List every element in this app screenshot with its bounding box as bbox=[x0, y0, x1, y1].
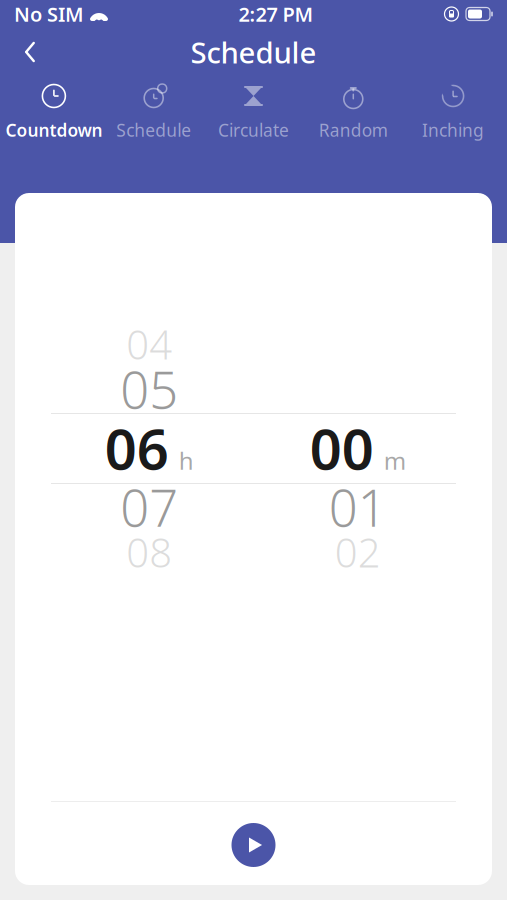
staticText: 05 bbox=[120, 355, 178, 423]
staticText: 06 bbox=[105, 411, 169, 485]
staticText: 2:27 PM bbox=[238, 1, 313, 27]
button[interactable]: Schedule bbox=[104, 78, 204, 145]
staticText: 08 bbox=[126, 525, 172, 578]
staticText: 01 bbox=[329, 473, 387, 541]
staticText: Countdown bbox=[5, 118, 102, 141]
staticText: Circulate bbox=[218, 118, 289, 141]
button[interactable]: Back bbox=[8, 30, 52, 74]
staticText: 02 bbox=[335, 525, 381, 578]
staticText: Schedule bbox=[116, 118, 191, 141]
staticText: Inching bbox=[422, 118, 484, 141]
staticText: Schedule bbox=[190, 32, 316, 71]
button[interactable]: Circulate bbox=[204, 78, 303, 145]
staticText: h bbox=[179, 444, 194, 476]
staticText: Random bbox=[319, 118, 388, 141]
button[interactable]: Inching bbox=[403, 78, 503, 145]
staticText: m bbox=[384, 444, 406, 476]
button[interactable]: Countdown bbox=[4, 78, 104, 145]
button[interactable]: Start bbox=[223, 815, 283, 875]
staticText: 00 bbox=[310, 411, 374, 485]
staticText: No SIM bbox=[14, 1, 84, 27]
staticText: 07 bbox=[120, 473, 178, 541]
staticText: 04 bbox=[126, 317, 172, 370]
button[interactable]: Random bbox=[303, 78, 403, 145]
